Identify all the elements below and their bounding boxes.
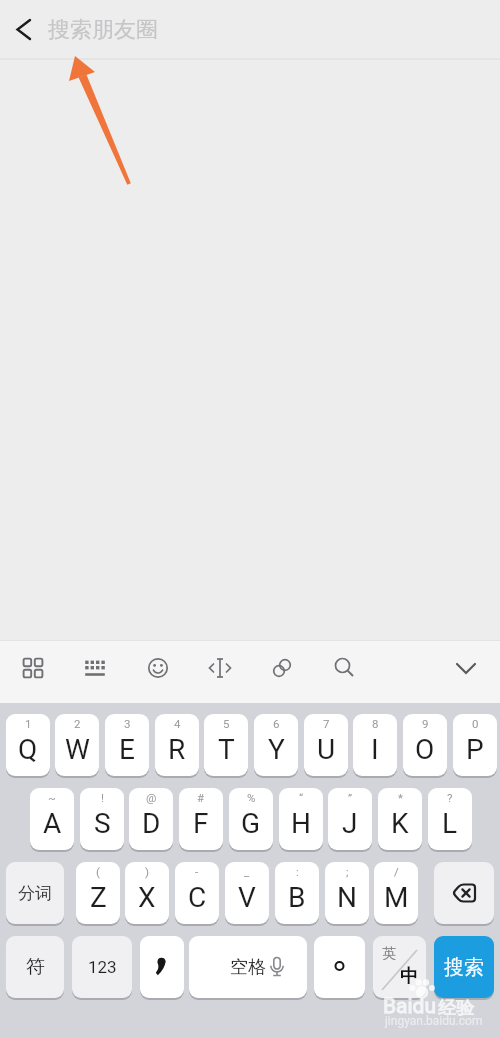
staticText: Y <box>268 733 285 766</box>
staticText: D <box>142 807 161 840</box>
staticText: U <box>317 733 336 766</box>
button[interactable] <box>444 646 488 696</box>
staticText: 8 <box>372 717 379 730</box>
staticText: J <box>342 807 358 840</box>
staticText: ( <box>96 865 100 878</box>
button[interactable]: 6 <box>254 714 298 776</box>
button[interactable] <box>140 936 184 998</box>
staticText: Q <box>18 733 38 766</box>
button[interactable]: / <box>374 862 418 924</box>
staticText: B <box>288 881 306 914</box>
staticText: A <box>43 807 62 840</box>
staticText: 7 <box>323 717 330 730</box>
button[interactable] <box>314 936 365 998</box>
staticText: L <box>442 807 458 840</box>
button[interactable]: 123 <box>72 936 132 998</box>
staticText: S <box>94 807 111 840</box>
button[interactable]: 5 <box>204 714 248 776</box>
button[interactable] <box>136 646 180 696</box>
button[interactable]: 3 <box>105 714 149 776</box>
button[interactable] <box>198 646 242 696</box>
button[interactable]: @ <box>129 788 173 850</box>
staticText: 1 <box>25 717 32 730</box>
button[interactable]: 分词 <box>6 862 64 924</box>
staticText: 9 <box>422 717 429 730</box>
staticText: W <box>65 733 90 766</box>
button[interactable]: 9 <box>403 714 447 776</box>
button[interactable] <box>11 646 55 696</box>
staticText: % <box>247 791 256 804</box>
staticText: C <box>188 881 207 914</box>
staticText: 5 <box>223 717 230 730</box>
staticText: N <box>337 881 357 914</box>
button[interactable] <box>323 646 367 696</box>
staticText: / <box>394 865 399 878</box>
staticText: 空格 <box>230 956 266 979</box>
staticText: : <box>296 865 299 878</box>
staticText: 2 <box>74 717 81 730</box>
staticText: R <box>168 733 186 766</box>
button[interactable]: ? <box>428 788 472 850</box>
staticText: G <box>241 807 261 840</box>
staticText: 3 <box>124 717 131 730</box>
staticText: 英 <box>382 945 396 963</box>
button[interactable]: 0 <box>453 714 497 776</box>
button[interactable]: 1 <box>6 714 50 776</box>
button[interactable]: _ <box>225 862 269 924</box>
button[interactable]: 7 <box>304 714 348 776</box>
button[interactable]: 4 <box>155 714 199 776</box>
staticText: ; <box>346 865 349 878</box>
button[interactable]: - <box>175 862 219 924</box>
button[interactable]: 符 <box>6 936 64 998</box>
staticText: 中 <box>400 965 418 988</box>
staticText: 6 <box>273 717 280 730</box>
staticText: P <box>466 733 484 766</box>
staticText: 符 <box>26 955 45 979</box>
staticText: 搜索 <box>444 955 484 980</box>
staticText: E <box>119 733 135 766</box>
button[interactable] <box>8 10 44 48</box>
staticText: I <box>371 733 379 766</box>
staticText: V <box>238 881 256 914</box>
staticText: # <box>197 791 205 804</box>
button[interactable]: : <box>275 862 319 924</box>
staticText: ) <box>145 865 150 878</box>
button[interactable]: ” <box>328 788 372 850</box>
staticText: 搜索朋友圈 <box>48 16 158 44</box>
button[interactable]: ~ <box>30 788 74 850</box>
staticText: jingyan.baidu.com <box>385 1014 483 1028</box>
staticText: Baidu <box>383 994 437 1019</box>
staticText: 123 <box>88 957 117 977</box>
staticText: 分词 <box>18 883 52 904</box>
button[interactable]: ! <box>80 788 124 850</box>
staticText: K <box>391 807 409 840</box>
staticText: Z <box>90 881 107 914</box>
staticText: T <box>218 733 235 766</box>
button[interactable] <box>434 862 494 924</box>
button[interactable]: # <box>179 788 223 850</box>
button[interactable]: 搜索 <box>434 936 494 998</box>
staticText: 0 <box>472 717 479 730</box>
button[interactable]: 2 <box>55 714 99 776</box>
button[interactable]: * <box>378 788 422 850</box>
staticText: 经验 <box>438 997 474 1020</box>
button[interactable]: 8 <box>353 714 397 776</box>
staticText: ~ <box>48 791 56 804</box>
staticText: X <box>138 881 156 914</box>
button[interactable]: 英 <box>373 936 426 998</box>
staticText: @ <box>146 791 157 804</box>
staticText: ” <box>348 791 353 804</box>
staticText: M <box>384 881 409 914</box>
button[interactable]: “ <box>279 788 323 850</box>
button[interactable] <box>260 646 304 696</box>
staticText: “ <box>299 791 304 804</box>
button[interactable]: 空格 <box>189 936 307 998</box>
staticText: - <box>195 865 199 878</box>
button[interactable]: ( <box>76 862 120 924</box>
button[interactable]: ) <box>125 862 169 924</box>
button[interactable]: % <box>229 788 273 850</box>
staticText: ! <box>101 791 104 804</box>
button[interactable]: ; <box>325 862 369 924</box>
button[interactable] <box>73 646 117 696</box>
staticText: * <box>398 791 403 804</box>
